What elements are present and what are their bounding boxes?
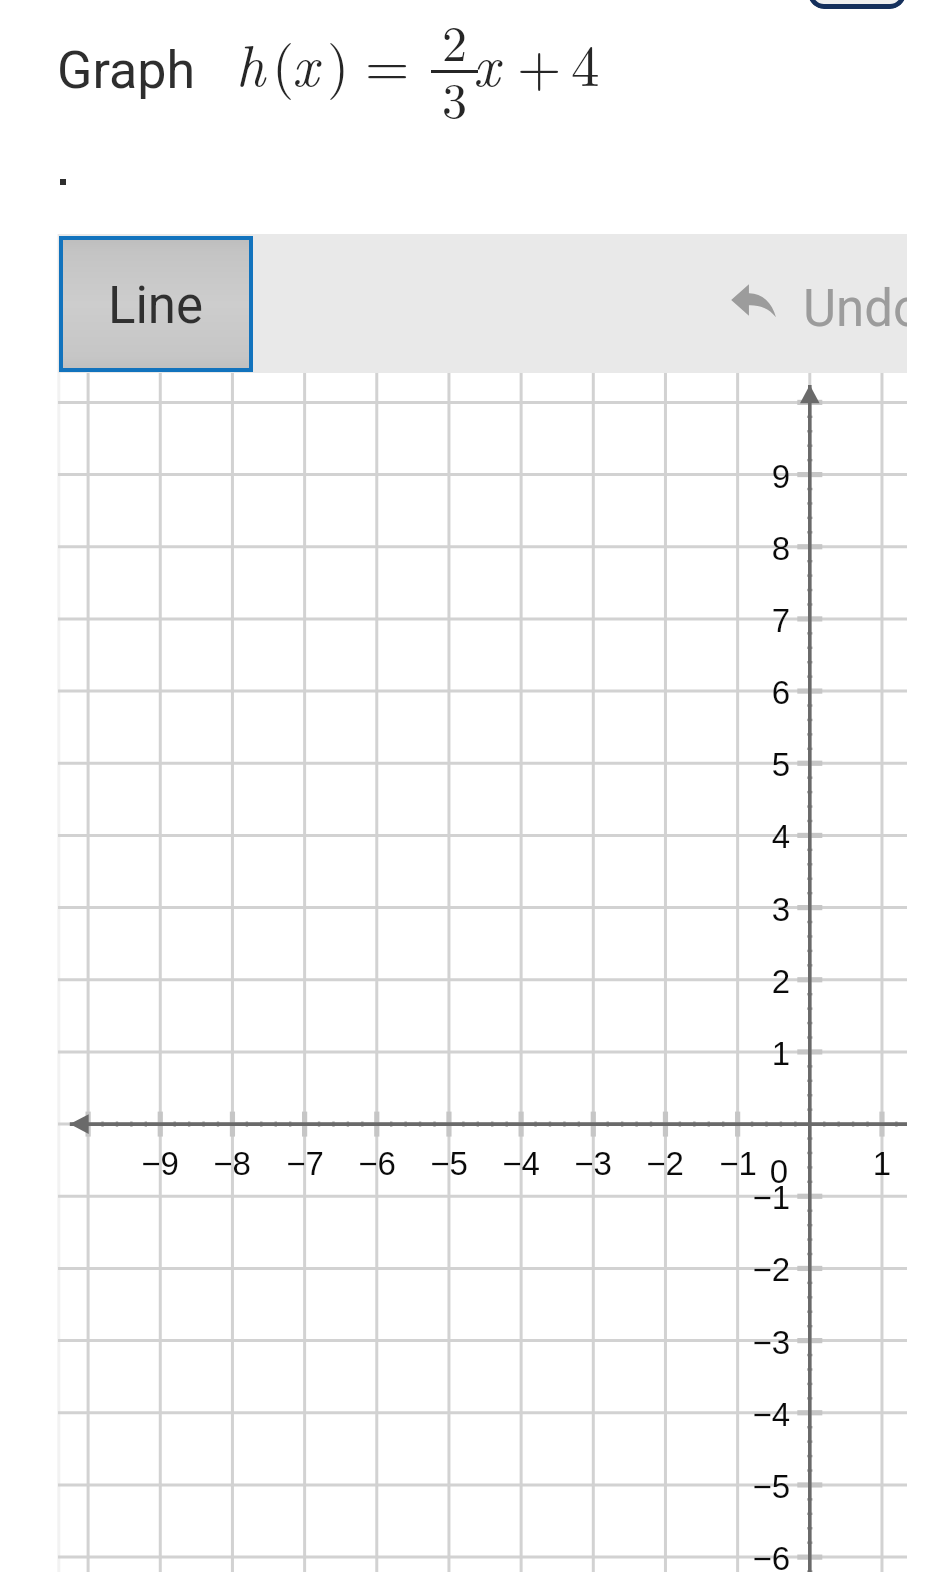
staticText: ( [272, 22, 295, 103]
button[interactable]: Undo [720, 256, 907, 352]
staticText: 4 [571, 22, 600, 103]
staticText: −3 [710, 1324, 790, 1572]
staticText: 5 [710, 746, 790, 1572]
staticText: x [473, 22, 500, 103]
button[interactable]: Tab [808, 0, 906, 9]
staticText: −4 [481, 1145, 561, 1572]
staticText: 8 [710, 530, 790, 1572]
staticText: h [236, 22, 266, 103]
staticText: Undo [803, 279, 907, 339]
staticText: −3 [553, 1145, 633, 1572]
staticText: −7 [265, 1145, 345, 1572]
staticText: = [365, 22, 410, 103]
staticText: + [517, 22, 562, 103]
staticText: 3 [710, 891, 790, 1572]
staticText: Line [108, 276, 204, 336]
staticText: 1 [842, 1145, 922, 1572]
staticText: 4 [710, 818, 790, 1572]
button[interactable]: Graph plotting area [58, 234, 907, 1572]
staticText: 0 [759, 1153, 799, 1572]
staticText: −6 [710, 1540, 790, 1572]
staticText: −5 [409, 1145, 489, 1572]
staticText: 2 [710, 963, 790, 1572]
staticText: 7 [710, 602, 790, 1572]
staticText: 6 [710, 674, 790, 1572]
staticText: −8 [192, 1145, 272, 1572]
staticText: −2 [625, 1145, 705, 1572]
staticText: 1 [710, 1035, 790, 1572]
staticText: ) [327, 22, 350, 103]
staticText: −6 [337, 1145, 417, 1572]
staticText: 2 [442, 5, 467, 76]
staticText: x [292, 22, 319, 103]
staticText: 3 [442, 62, 467, 133]
staticText: Graph [57, 40, 196, 101]
staticText: 9 [710, 458, 790, 1572]
staticText: −1 [698, 1145, 778, 1572]
staticText: −1 [710, 1179, 790, 1572]
button[interactable]: Line [59, 236, 253, 372]
staticText: −4 [710, 1396, 790, 1572]
staticText: −5 [710, 1468, 790, 1572]
staticText: −9 [120, 1145, 200, 1572]
staticText: −2 [710, 1251, 790, 1572]
